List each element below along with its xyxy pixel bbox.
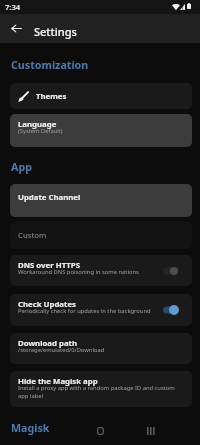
button[interactable]: Toggle off (163, 265, 182, 277)
button[interactable]: Custom (10, 222, 192, 249)
staticText: Install a proxy app with a random packag… (18, 384, 184, 400)
button[interactable]: Back (3, 15, 29, 41)
staticText: Download path (18, 338, 78, 349)
other: Themes (18, 91, 29, 102)
button[interactable]: Check Updates (10, 294, 192, 326)
button[interactable]: Recents (135, 419, 165, 443)
staticText: Update Channel (18, 192, 81, 203)
staticText: Custom (18, 230, 47, 241)
staticText: /storage/emulated/0/Download (18, 346, 105, 354)
button[interactable]: Back (35, 419, 65, 443)
staticText: DNS over HTTPS (18, 260, 80, 271)
button[interactable]: Home (85, 419, 115, 443)
staticText: Check Updates (18, 299, 76, 310)
button[interactable]: Download path (10, 333, 192, 364)
button[interactable]: Themes (10, 83, 192, 109)
button[interactable]: Update Channel (10, 184, 192, 217)
staticText: Magisk (11, 421, 50, 436)
staticText: Themes (36, 91, 67, 102)
staticText: Customization (11, 58, 89, 73)
button[interactable]: Toggle on (163, 304, 182, 316)
button[interactable]: Language (10, 114, 192, 147)
staticText: Hide the Magisk app (18, 376, 98, 387)
staticText: Periodically check for updates in the ba… (18, 307, 151, 315)
staticText: App (11, 160, 32, 175)
staticText: (System Default) (18, 127, 63, 135)
staticText: 7:34 (5, 2, 21, 12)
staticText: Workaround DNS poisoning in some nations (18, 268, 139, 276)
button[interactable]: DNS over HTTPS (10, 255, 192, 286)
button[interactable]: Hide the Magisk app (10, 371, 192, 407)
staticText: Settings (34, 24, 77, 39)
staticText: Language (18, 119, 57, 130)
